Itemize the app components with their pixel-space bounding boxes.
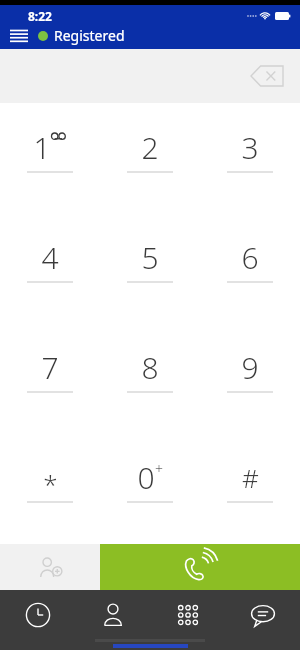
button[interactable]: Add contact [0, 544, 100, 590]
button[interactable]: Messages [225, 590, 300, 640]
staticText: + [155, 459, 163, 478]
staticText: 6 [241, 237, 259, 278]
button[interactable]: 2 [100, 103, 200, 214]
button[interactable]: Open menu [0, 22, 38, 49]
button[interactable]: 5 [100, 214, 200, 324]
staticText: * [43, 466, 58, 501]
button[interactable]: * [0, 434, 100, 544]
button[interactable]: 4 [0, 214, 100, 324]
staticText: 7 [41, 347, 59, 388]
button[interactable]: Registered [38, 26, 125, 45]
button[interactable]: Call [100, 544, 300, 590]
button[interactable]: # [200, 434, 300, 544]
button[interactable]: Contacts [75, 590, 150, 640]
button[interactable]: 7 [0, 324, 100, 434]
staticText: 2 [141, 127, 159, 168]
button[interactable]: Recent calls [0, 590, 75, 640]
staticText: 3 [241, 127, 259, 168]
button[interactable]: Backspace [246, 59, 288, 93]
button[interactable]: 1 [0, 103, 100, 214]
staticText: 8:22 [28, 8, 52, 24]
staticText: 4 [41, 237, 59, 278]
button[interactable]: 8 [100, 324, 200, 434]
button[interactable]: 9 [200, 324, 300, 434]
staticText: # [242, 460, 259, 495]
button[interactable]: 3 [200, 103, 300, 214]
staticText: 8 [141, 347, 159, 388]
staticText: Registered [54, 26, 125, 45]
staticText: 5 [141, 237, 159, 278]
staticText: 1 [33, 127, 51, 168]
button[interactable]: Keypad [150, 590, 225, 640]
staticText: 0 [137, 457, 155, 498]
button[interactable]: 0 [100, 434, 200, 544]
button[interactable]: 6 [200, 214, 300, 324]
staticText: 9 [241, 347, 259, 388]
